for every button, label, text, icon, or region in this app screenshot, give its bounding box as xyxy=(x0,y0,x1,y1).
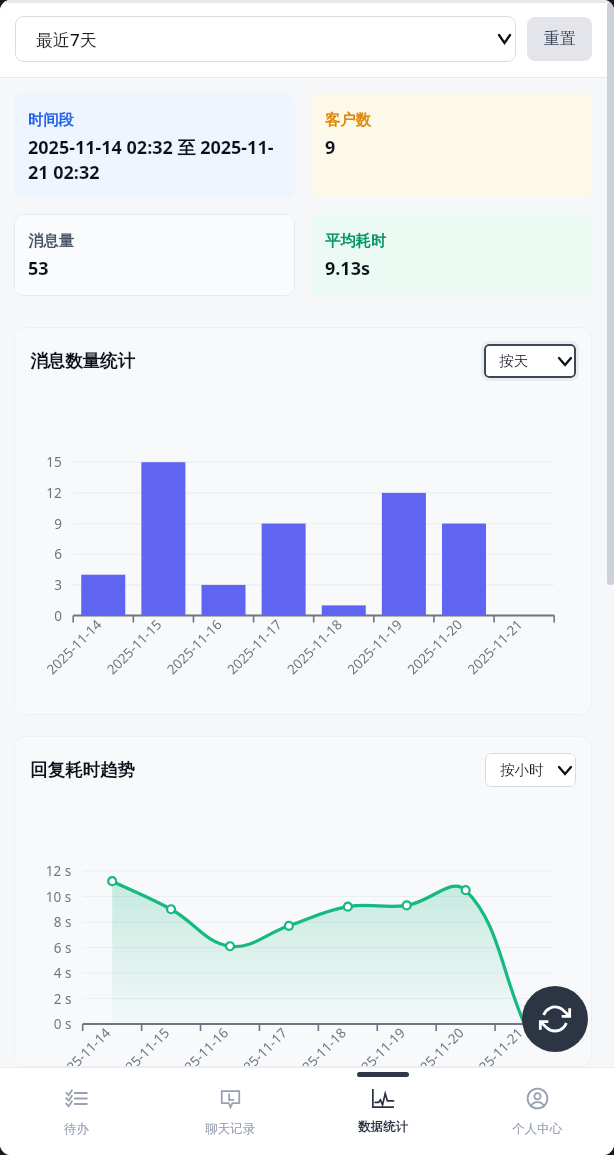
staticText: 最近7天 xyxy=(36,28,97,51)
staticText: 客户数 xyxy=(325,110,371,129)
staticText: 9.13s xyxy=(325,256,370,281)
button[interactable]: 聊天记录 xyxy=(153,1067,306,1155)
staticText: 按小时 xyxy=(500,761,544,779)
staticText: 消息量 xyxy=(28,231,74,250)
staticText: 按天 xyxy=(499,352,528,370)
button[interactable]: 数据统计 xyxy=(306,1067,460,1155)
staticText: 待办 xyxy=(64,1121,89,1137)
button[interactable]: 最近7天 xyxy=(15,16,516,62)
staticText: 时间段 xyxy=(28,110,74,129)
staticText: 数据统计 xyxy=(358,1119,408,1135)
staticText: 重置 xyxy=(544,29,576,49)
staticText: 9 xyxy=(325,135,336,160)
staticText: 53 xyxy=(28,256,49,281)
button[interactable]: 个人中心 xyxy=(460,1067,614,1155)
staticText: 消息数量统计 xyxy=(30,350,135,372)
button[interactable]: 按小时 xyxy=(482,750,579,790)
staticText: 聊天记录 xyxy=(205,1121,255,1137)
button[interactable]: 重置 xyxy=(527,17,592,61)
button[interactable]: 按天 xyxy=(481,341,579,381)
staticText: 回复耗时趋势 xyxy=(30,759,135,781)
staticText: 2025-11-14 02:32 至 2025-11- 21 02:32 xyxy=(28,135,274,185)
button[interactable]: 待办 xyxy=(0,1067,153,1155)
staticText: 平均耗时 xyxy=(325,231,387,250)
staticText: 个人中心 xyxy=(512,1121,562,1137)
button[interactable]: Refresh xyxy=(522,986,588,1052)
